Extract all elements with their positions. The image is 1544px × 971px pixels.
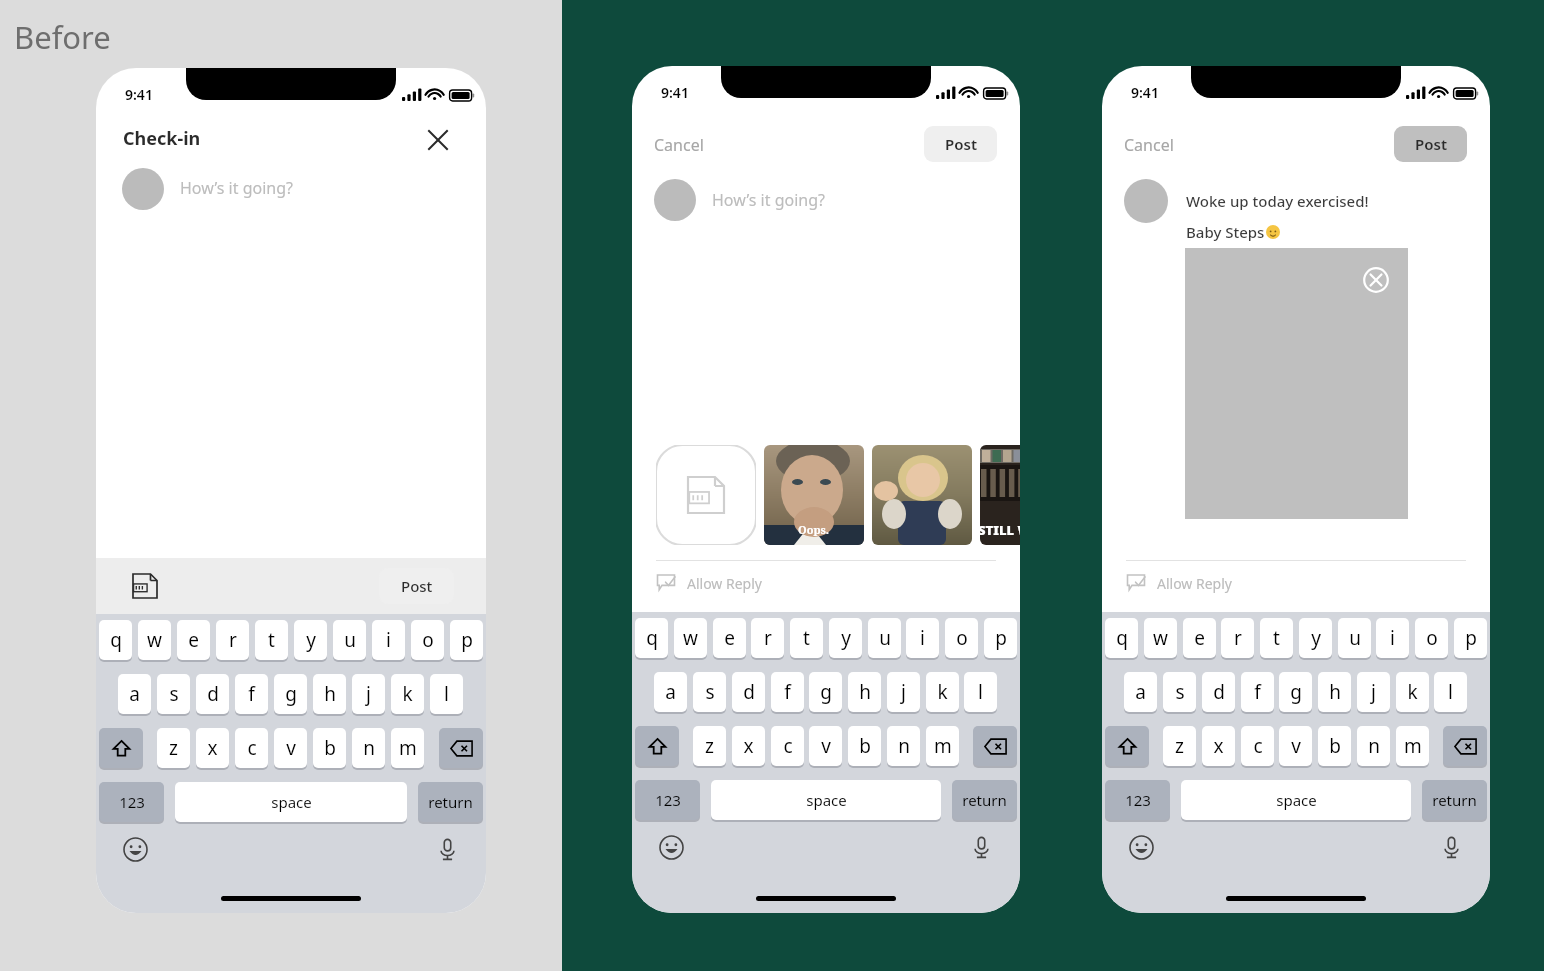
button[interactable]: 123	[99, 782, 164, 822]
button[interactable]: q	[1105, 618, 1138, 658]
button[interactable]: c	[1241, 726, 1274, 766]
button[interactable]: p	[1454, 618, 1487, 658]
button[interactable]: Backspace	[973, 726, 1017, 766]
button[interactable]: Insert GIF	[128, 570, 162, 602]
button[interactable]: m	[391, 728, 424, 768]
button[interactable]: c	[235, 728, 268, 768]
button[interactable]: y	[829, 618, 862, 658]
button[interactable]: b	[313, 728, 346, 768]
button[interactable]: i	[372, 620, 405, 660]
button[interactable]: p	[984, 618, 1017, 658]
button[interactable]: a	[1124, 672, 1157, 712]
button[interactable]: Cancel	[654, 128, 744, 162]
button[interactable]	[1124, 179, 1168, 223]
button[interactable]: Post	[379, 568, 454, 604]
button[interactable]: g	[1279, 672, 1312, 712]
button[interactable]: Allow Reply	[1126, 566, 1326, 600]
button[interactable]: l	[964, 672, 997, 712]
button[interactable]: f	[771, 672, 804, 712]
button[interactable]: space	[711, 780, 941, 820]
button[interactable]: 123	[635, 780, 700, 820]
button[interactable]: w	[674, 618, 707, 658]
button[interactable]: t	[790, 618, 823, 658]
button[interactable]: b	[848, 726, 881, 766]
button[interactable]: j	[352, 674, 385, 714]
button[interactable]: Remove image	[1359, 263, 1393, 297]
button[interactable]: s	[157, 674, 190, 714]
button[interactable]: z	[1163, 726, 1196, 766]
button[interactable]: z	[157, 728, 190, 768]
button[interactable]: s	[693, 672, 726, 712]
button[interactable]: return	[1422, 780, 1487, 820]
button[interactable]: d	[1202, 672, 1235, 712]
button[interactable]: o	[1415, 618, 1448, 658]
button[interactable]	[872, 445, 972, 545]
button[interactable]: k	[1396, 672, 1429, 712]
button[interactable]: y	[294, 620, 327, 660]
button[interactable]: i	[906, 618, 939, 658]
button[interactable]: u	[333, 620, 366, 660]
button[interactable]: a	[654, 672, 687, 712]
button[interactable]: r	[216, 620, 249, 660]
button[interactable]: Dictate	[1434, 830, 1468, 864]
button[interactable]: u	[868, 618, 901, 658]
button[interactable]: n	[1357, 726, 1390, 766]
button[interactable]: Cancel	[1124, 128, 1214, 162]
button[interactable]: c	[771, 726, 804, 766]
button[interactable]: r	[1221, 618, 1254, 658]
button[interactable]: b	[1318, 726, 1351, 766]
button[interactable]: v	[1279, 726, 1312, 766]
button[interactable]	[122, 168, 164, 210]
button[interactable]: return	[952, 780, 1017, 820]
button[interactable]: r	[751, 618, 784, 658]
button[interactable]: Close	[418, 120, 458, 160]
button[interactable]: p	[450, 620, 483, 660]
button[interactable]: Post	[1394, 126, 1467, 162]
button[interactable]: k	[926, 672, 959, 712]
button[interactable]: o	[411, 620, 444, 660]
button[interactable]: Emoji	[118, 832, 152, 866]
button[interactable]: e	[1183, 618, 1216, 658]
button[interactable]: g	[274, 674, 307, 714]
button[interactable]: Emoji	[654, 830, 688, 864]
button[interactable]: space	[1181, 780, 1411, 820]
button[interactable]: Backspace	[1443, 726, 1487, 766]
button[interactable]: m	[1396, 726, 1429, 766]
button[interactable]: Shift	[99, 728, 143, 768]
button[interactable]: l	[430, 674, 463, 714]
button[interactable]: d	[196, 674, 229, 714]
button[interactable]: Backspace	[439, 728, 483, 768]
button[interactable]: i	[1376, 618, 1409, 658]
button[interactable]: Shift	[1105, 726, 1149, 766]
button[interactable]: q	[635, 618, 668, 658]
button[interactable]: w	[138, 620, 171, 660]
button[interactable]: e	[177, 620, 210, 660]
button[interactable]: space	[175, 782, 407, 822]
button[interactable]: 123	[1105, 780, 1170, 820]
button[interactable]: h	[848, 672, 881, 712]
button[interactable]: n	[887, 726, 920, 766]
button[interactable]: Emoji	[1124, 830, 1158, 864]
button[interactable]: y	[1299, 618, 1332, 658]
button[interactable]: Dictate	[964, 830, 998, 864]
button[interactable]: t	[255, 620, 288, 660]
button[interactable]	[656, 445, 756, 545]
button[interactable]: Oops.	[764, 445, 864, 545]
button[interactable]: s	[1163, 672, 1196, 712]
button[interactable]: v	[274, 728, 307, 768]
button[interactable]: return	[418, 782, 483, 822]
button[interactable]	[654, 179, 696, 221]
button[interactable]: m	[926, 726, 959, 766]
button[interactable]: w	[1144, 618, 1177, 658]
button[interactable]: u	[1338, 618, 1371, 658]
button[interactable]: h	[1318, 672, 1351, 712]
button[interactable]: x	[1202, 726, 1235, 766]
button[interactable]: v	[809, 726, 842, 766]
button[interactable]: t	[1260, 618, 1293, 658]
button[interactable]: a	[118, 674, 151, 714]
button[interactable]: Shift	[635, 726, 679, 766]
button[interactable]: f	[235, 674, 268, 714]
button[interactable]: z	[693, 726, 726, 766]
button[interactable]: l	[1434, 672, 1467, 712]
button[interactable]: j	[1357, 672, 1390, 712]
